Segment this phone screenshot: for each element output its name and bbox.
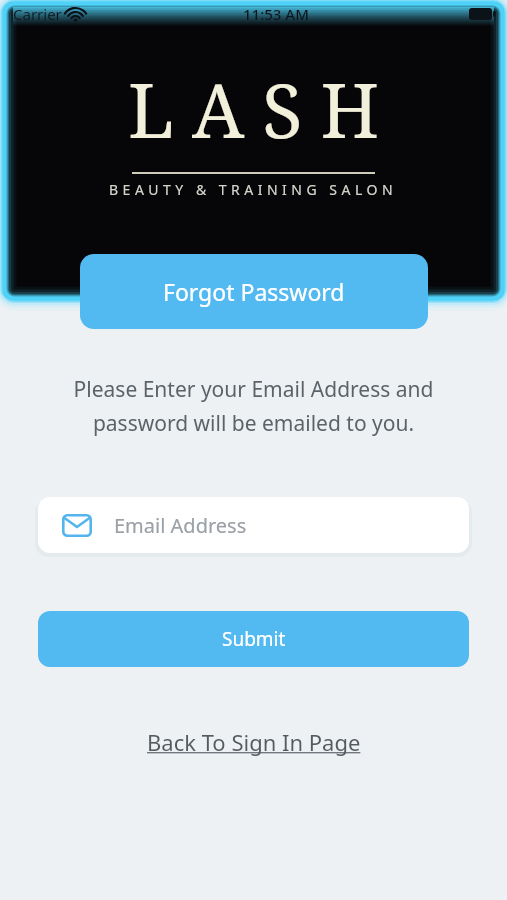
staticText: Submit bbox=[222, 626, 286, 652]
button[interactable]: Forgot Password bbox=[80, 254, 428, 329]
button[interactable]: Submit bbox=[38, 611, 469, 667]
staticText: 11:53 AM bbox=[243, 4, 309, 24]
staticText: Forgot Password bbox=[163, 276, 345, 307]
staticText: LASH bbox=[128, 59, 398, 160]
staticText: Carrier bbox=[13, 4, 62, 24]
staticText: Please Enter your Email Address and pass… bbox=[0, 375, 507, 437]
staticText: Email Address bbox=[114, 512, 247, 539]
button[interactable]: Email Address bbox=[38, 497, 469, 553]
staticText: BEAUTY & TRAINING SALON bbox=[109, 180, 398, 199]
button[interactable]: Back To Sign In Page bbox=[147, 727, 361, 757]
